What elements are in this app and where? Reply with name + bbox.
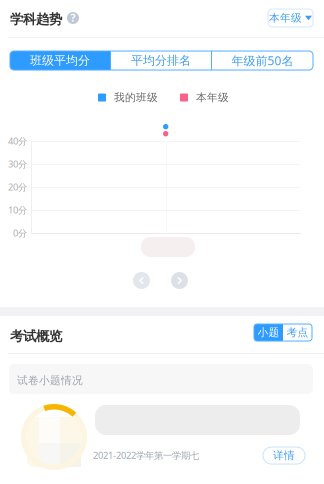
button[interactable]: 考点	[283, 324, 312, 341]
staticText: ?	[70, 10, 75, 25]
staticText: 年级前50名	[231, 52, 293, 68]
staticText: 详情	[273, 449, 295, 462]
button[interactable]: 详情	[263, 447, 305, 464]
staticText: 本年级	[269, 11, 302, 24]
staticText: 2021-2022学年第一学期七	[93, 449, 199, 461]
staticText: 40分	[8, 135, 27, 147]
staticText: 学科趋势	[10, 11, 62, 27]
staticText: 10分	[8, 204, 27, 216]
staticText: 平均分排名	[131, 53, 191, 68]
button[interactable]: 平均分排名	[111, 51, 211, 70]
staticText: 班级平均分	[30, 53, 90, 68]
button[interactable]: 本年级	[268, 9, 313, 27]
staticText: 0分	[13, 227, 27, 239]
staticText: 考试概览	[10, 328, 62, 344]
button[interactable]: 班级平均分	[10, 51, 110, 70]
staticText: 考点	[286, 326, 308, 339]
button[interactable]: 小题	[254, 324, 283, 341]
staticText: 我的班级	[114, 91, 158, 104]
button[interactable]: 年级前50名	[212, 51, 313, 70]
staticText: 本年级	[196, 91, 229, 104]
staticText: 试卷小题情况	[17, 374, 83, 387]
staticText: 20分	[8, 181, 27, 193]
button[interactable]: Previous page	[133, 272, 150, 289]
staticText: 小题	[257, 326, 279, 339]
staticText: 30分	[8, 158, 27, 170]
button[interactable]: Next page	[171, 272, 188, 289]
